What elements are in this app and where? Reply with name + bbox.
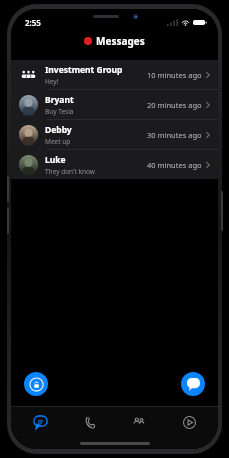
staticText: Investment Group	[45, 64, 123, 76]
staticText: Messages	[96, 34, 145, 48]
staticText: They don't know	[45, 167, 95, 176]
staticText: Hey!	[45, 77, 59, 86]
button[interactable]: Secure chat	[24, 372, 48, 396]
staticText: 40 minutes ago	[147, 160, 202, 170]
staticText: Buy Tesla	[45, 107, 74, 116]
staticText: 20 minutes ago	[147, 100, 202, 110]
staticText: Luke	[45, 154, 66, 166]
staticText: Meet up	[45, 137, 71, 146]
button[interactable]: Luke	[11, 150, 218, 179]
staticText: 10 minutes ago	[147, 70, 202, 80]
staticText: Bryant	[45, 94, 74, 106]
staticText: 30 minutes ago	[147, 130, 202, 140]
button[interactable]: Bryant	[11, 90, 218, 119]
staticText: Debby	[45, 124, 72, 136]
button[interactable]: Debby	[11, 120, 218, 149]
button[interactable]: Calls	[70, 407, 110, 437]
button[interactable]: New message	[181, 372, 205, 396]
button[interactable]: Chats	[20, 407, 60, 437]
button[interactable]: Contacts	[119, 407, 159, 437]
button[interactable]: Investment Group	[11, 60, 218, 89]
staticText: 2:55	[25, 17, 41, 28]
button[interactable]: Discover	[169, 407, 209, 437]
